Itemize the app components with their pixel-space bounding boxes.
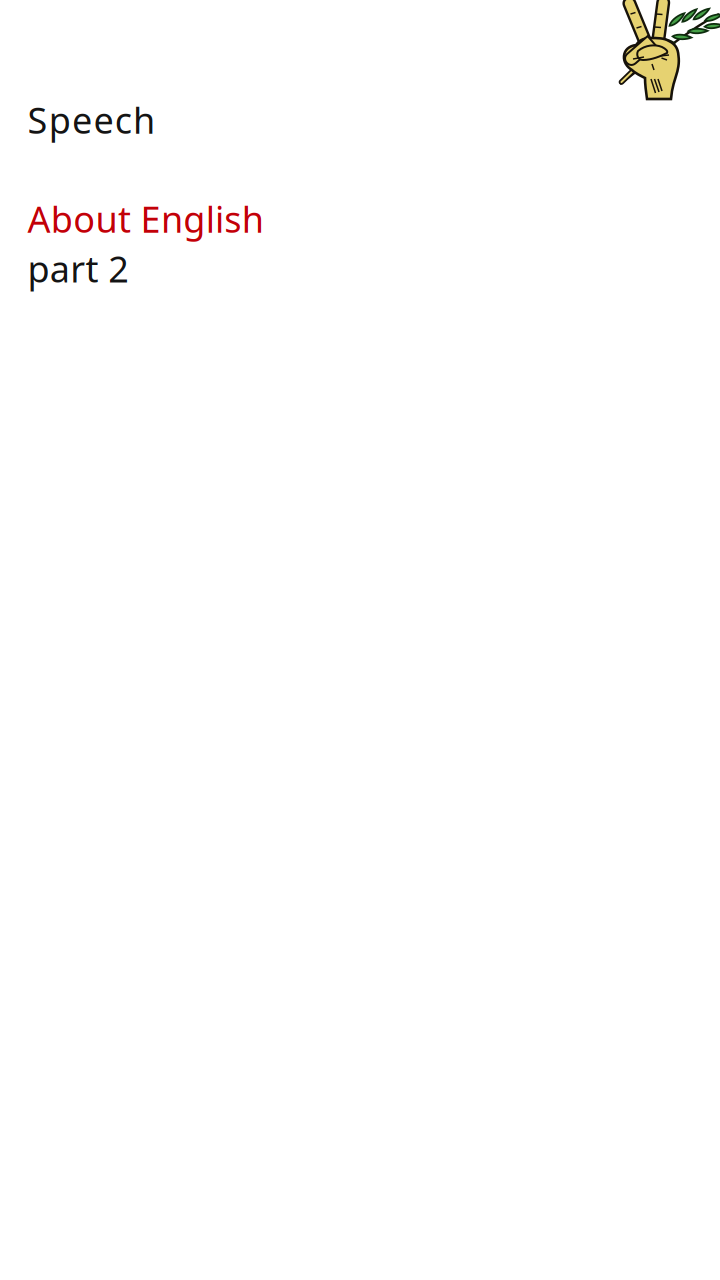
staticText: part 2 xyxy=(27,245,129,292)
button[interactable]: Peace logo xyxy=(616,0,720,104)
staticText: About English xyxy=(27,195,264,243)
staticText: Speech xyxy=(27,96,155,144)
